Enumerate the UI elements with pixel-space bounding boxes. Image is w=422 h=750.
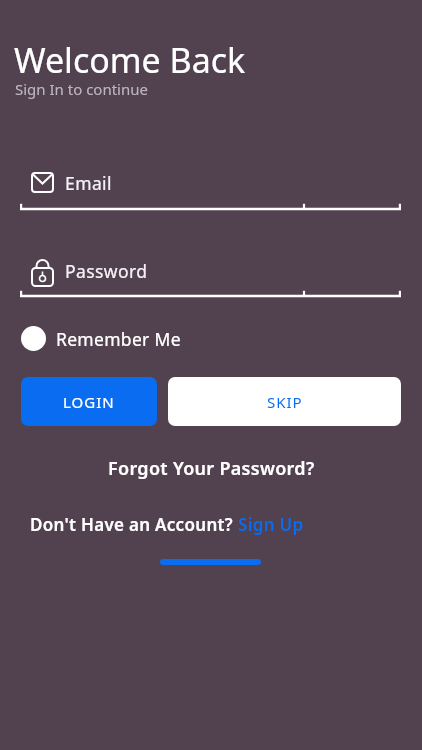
button[interactable]: Forgot Your Password? — [108, 456, 315, 481]
button[interactable]: Password — [0, 248, 422, 303]
button[interactable]: Sign Up — [238, 513, 304, 536]
staticText: Email — [65, 171, 112, 195]
staticText: Sign In to continue — [15, 79, 148, 99]
staticText: Remember Me — [56, 327, 181, 351]
staticText: Don't Have an Account? — [30, 513, 238, 536]
staticText: SKIP — [267, 392, 303, 412]
button[interactable]: LOGIN — [21, 377, 157, 426]
staticText: Welcome Back — [14, 37, 246, 83]
staticText: Password — [65, 259, 148, 283]
button[interactable]: SKIP — [168, 377, 401, 426]
button[interactable]: Email — [0, 160, 422, 215]
button[interactable]: Remember Me — [21, 326, 181, 351]
staticText: LOGIN — [63, 392, 115, 412]
